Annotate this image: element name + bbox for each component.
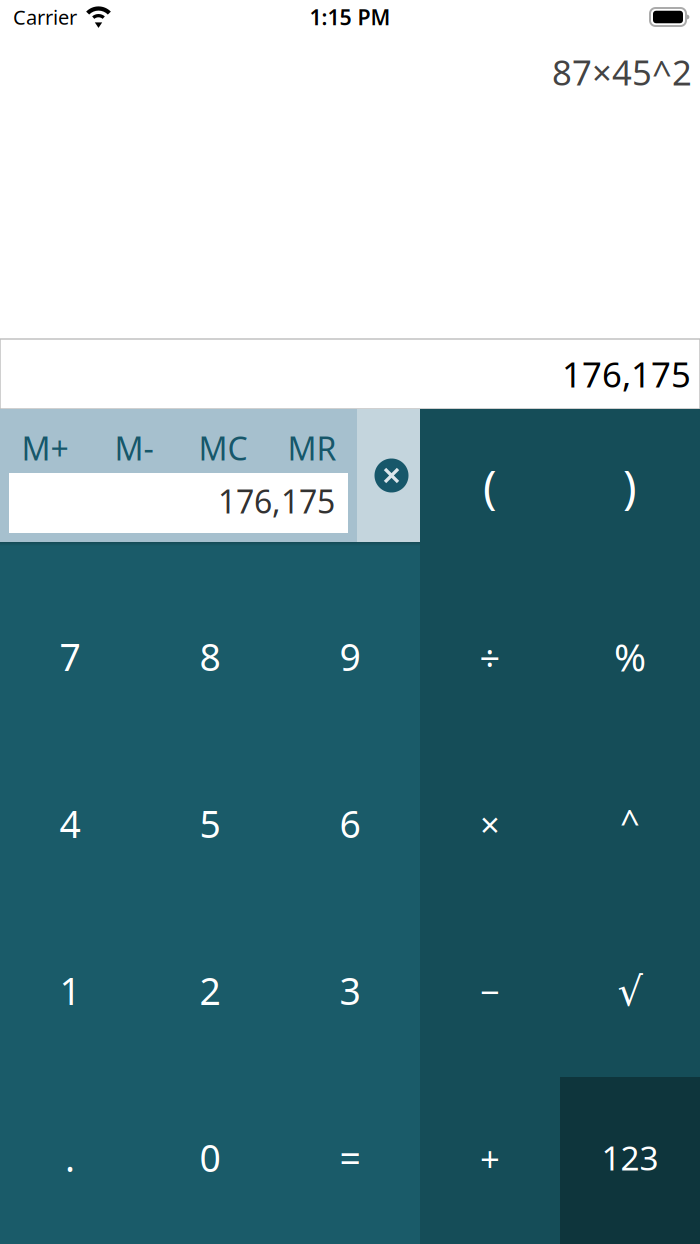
button[interactable]: blank bbox=[140, 409, 280, 576]
staticText: 3 bbox=[339, 966, 360, 1015]
button[interactable]: 4 bbox=[0, 743, 140, 910]
button[interactable]: 5 bbox=[140, 743, 280, 910]
button[interactable]: exponent bbox=[560, 743, 700, 910]
staticText: ( bbox=[483, 456, 497, 517]
button[interactable]: plus bbox=[420, 1077, 560, 1244]
button[interactable]: 9 bbox=[280, 576, 420, 743]
staticText: 1:15 PM bbox=[309, 3, 390, 31]
staticText: ) bbox=[623, 456, 637, 517]
staticText: M- bbox=[114, 427, 153, 469]
button[interactable]: decimal point bbox=[0, 1077, 140, 1244]
button[interactable]: Close memory bbox=[357, 409, 420, 542]
button[interactable]: minus bbox=[420, 910, 560, 1077]
button[interactable]: 8 bbox=[140, 576, 280, 743]
staticText: × bbox=[480, 801, 500, 847]
staticText: MR bbox=[287, 427, 336, 469]
button[interactable]: square root bbox=[560, 910, 700, 1077]
button[interactable]: close parenthesis bbox=[560, 409, 700, 576]
button[interactable]: 7 bbox=[0, 576, 140, 743]
button[interactable]: 0 bbox=[140, 1077, 280, 1244]
button[interactable]: MC bbox=[178, 410, 267, 472]
staticText: 176,175 bbox=[562, 351, 691, 397]
staticText: 176,175 bbox=[218, 480, 335, 522]
staticText: 123 bbox=[601, 1135, 658, 1180]
button[interactable]: 3 bbox=[280, 910, 420, 1077]
button[interactable]: blank bbox=[280, 409, 420, 576]
staticText: 4 bbox=[59, 799, 80, 848]
staticText: ^ bbox=[620, 798, 640, 844]
staticText: = bbox=[339, 1133, 360, 1182]
button[interactable]: equals bbox=[280, 1077, 420, 1244]
staticText: 7 bbox=[59, 632, 80, 681]
staticText: 9 bbox=[339, 632, 360, 681]
button[interactable]: numeric keypad bbox=[560, 1077, 700, 1244]
button[interactable]: percent bbox=[560, 576, 700, 743]
button[interactable]: M- bbox=[89, 410, 178, 472]
staticText: % bbox=[614, 631, 646, 682]
staticText: M+ bbox=[21, 427, 68, 469]
button[interactable]: divide bbox=[420, 576, 560, 743]
staticText: 2 bbox=[199, 966, 220, 1015]
button[interactable]: blank bbox=[0, 409, 140, 576]
staticText: 0 bbox=[199, 1133, 220, 1182]
staticText: MC bbox=[198, 427, 247, 469]
staticText: − bbox=[480, 968, 500, 1014]
staticText: + bbox=[480, 1135, 500, 1181]
button[interactable]: multiply bbox=[420, 743, 560, 910]
button[interactable]: open parenthesis bbox=[420, 409, 560, 576]
staticText: 8 bbox=[199, 632, 220, 681]
staticText: ÷ bbox=[479, 633, 500, 681]
button[interactable]: M+ bbox=[0, 410, 89, 472]
staticText: 87×45^2 bbox=[552, 49, 692, 95]
button[interactable]: 1 bbox=[0, 910, 140, 1077]
button[interactable]: 2 bbox=[140, 910, 280, 1077]
button[interactable]: 6 bbox=[280, 743, 420, 910]
staticText: 1 bbox=[59, 966, 80, 1015]
staticText: . bbox=[65, 1133, 75, 1182]
staticText: √ bbox=[617, 969, 642, 1015]
staticText: 5 bbox=[199, 799, 220, 848]
staticText: 6 bbox=[339, 799, 360, 848]
staticText: Carrier bbox=[13, 4, 77, 30]
button[interactable]: MR bbox=[267, 410, 356, 472]
